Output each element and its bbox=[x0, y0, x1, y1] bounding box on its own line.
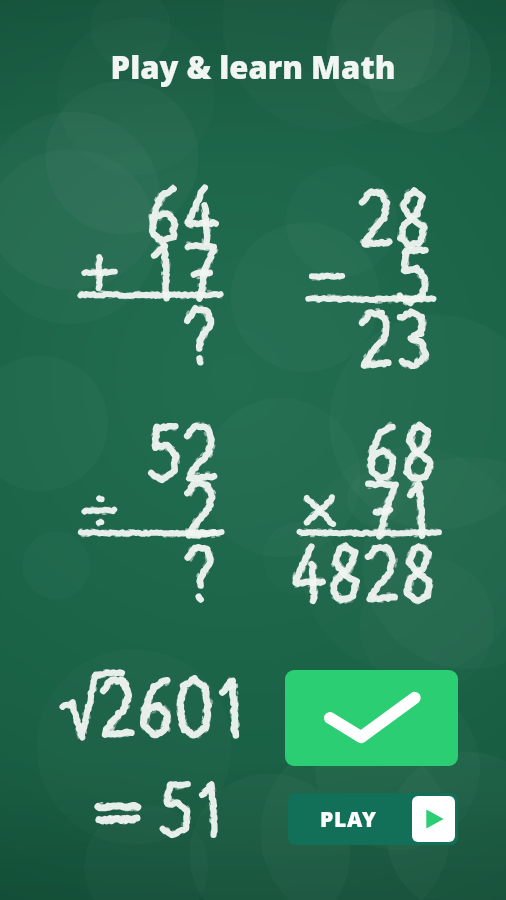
staticText: PLAY bbox=[320, 805, 377, 834]
button[interactable]: Check answer bbox=[285, 670, 458, 766]
button[interactable]: PLAY bbox=[288, 793, 458, 845]
staticText: Play & learn Math bbox=[0, 46, 506, 88]
